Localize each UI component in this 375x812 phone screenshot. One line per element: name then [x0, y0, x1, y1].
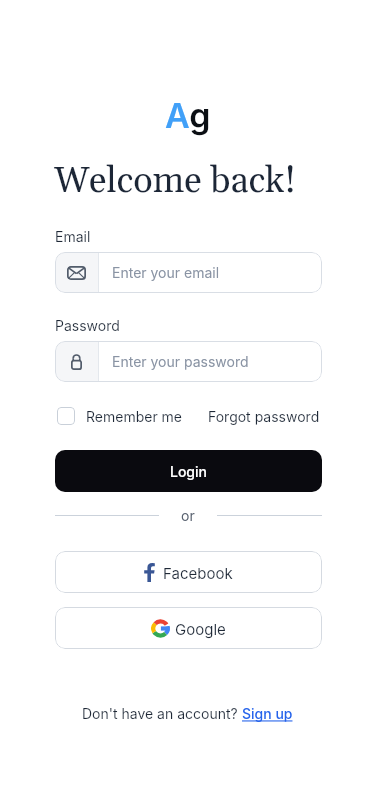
staticText: Welcome back! — [54, 159, 297, 205]
staticText: Ag — [165, 95, 211, 136]
button[interactable]: Facebook — [55, 551, 322, 593]
button[interactable]: Login — [55, 450, 322, 492]
button[interactable]: Google — [55, 607, 322, 649]
staticText: Facebook — [163, 564, 233, 582]
staticText: Email — [55, 228, 91, 245]
button[interactable]: Enter your password — [55, 341, 322, 382]
staticText: Password — [55, 317, 120, 334]
staticText: Google — [175, 620, 226, 638]
staticText: Enter your password — [112, 353, 249, 370]
staticText: or — [181, 507, 195, 524]
button[interactable]: Forgot password — [208, 408, 320, 425]
staticText: Remember me — [86, 408, 183, 425]
button[interactable]: Enter your email — [55, 252, 322, 293]
button[interactable]: Remember me — [57, 407, 183, 425]
button[interactable]: Sign up — [242, 705, 293, 722]
staticText: Login — [170, 463, 207, 480]
staticText: Don't have an account? — [82, 705, 242, 722]
staticText: Enter your email — [112, 264, 220, 281]
